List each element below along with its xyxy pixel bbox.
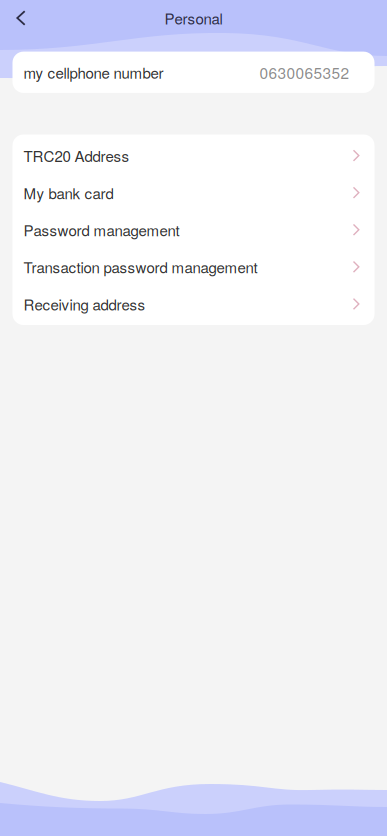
staticText: Transaction password management — [23, 256, 257, 278]
staticText: my cellphone number — [23, 61, 163, 83]
button[interactable]: Receiving address — [12, 285, 374, 322]
staticText: Personal — [164, 7, 222, 29]
button[interactable]: Password management — [12, 211, 374, 248]
staticText: TRC20 Address — [23, 145, 129, 166]
button[interactable]: My bank card — [12, 174, 374, 211]
button[interactable]: Back — [1, 0, 41, 36]
button[interactable]: Transaction password management — [12, 248, 374, 285]
staticText: My bank card — [23, 182, 113, 203]
staticText: Receiving address — [23, 293, 145, 315]
staticText: Password management — [23, 219, 179, 241]
staticText: 0630065352 — [259, 61, 349, 83]
button[interactable]: TRC20 Address — [12, 137, 374, 174]
